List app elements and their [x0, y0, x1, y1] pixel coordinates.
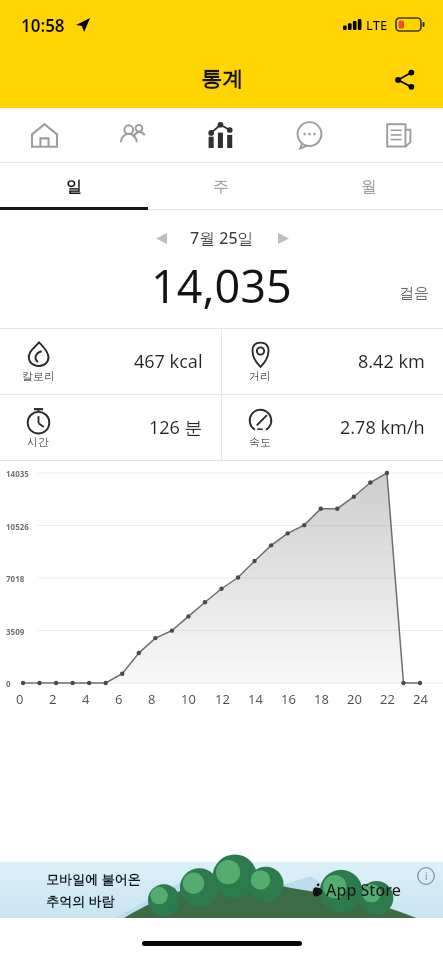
button[interactable]: News [354, 108, 443, 162]
staticText: 14,035 [151, 255, 292, 316]
staticText: 3509 [6, 626, 25, 637]
staticText: 16 [281, 690, 296, 708]
staticText: 14 [248, 690, 263, 708]
staticText: 24 [413, 690, 428, 708]
staticText: 시간 [27, 435, 49, 449]
staticText: App Store [326, 879, 401, 901]
button[interactable]: 속도 [222, 395, 443, 460]
button[interactable]: Previous day [146, 223, 176, 253]
staticText: 0 [16, 690, 24, 708]
staticText: 22 [380, 690, 395, 708]
staticText: 7월 25일 [190, 227, 254, 249]
staticText: 18 [314, 690, 329, 708]
staticText: 467 kcal [134, 349, 203, 374]
staticText: 2.78 km/h [340, 415, 425, 440]
staticText: 모바일에 불어온 [46, 870, 141, 888]
staticText: 거리 [249, 369, 271, 383]
button[interactable]: 모바일에 불어온 [0, 862, 443, 918]
staticText: 10 [181, 690, 196, 708]
staticText: 주 [213, 177, 229, 197]
staticText: 8.42 km [358, 349, 425, 374]
button[interactable]: 시간 [0, 395, 221, 460]
button[interactable]: 주 [147, 163, 295, 210]
staticText: 7018 [6, 573, 25, 584]
button[interactable]: Chat [265, 108, 354, 162]
button[interactable]: Next day [268, 223, 298, 253]
staticText: 월 [361, 177, 377, 197]
staticText: 6 [115, 690, 123, 708]
button[interactable]: 칼로리 [0, 329, 221, 394]
staticText: 0 [6, 678, 11, 689]
button[interactable]: 거리 [222, 329, 443, 394]
button[interactable]: Friends [88, 108, 176, 162]
staticText: LTE [366, 16, 388, 34]
button[interactable]: Share [382, 57, 426, 101]
staticText: 10526 [6, 521, 29, 532]
staticText: 2 [49, 690, 57, 708]
button[interactable]: Statistics [176, 108, 265, 162]
staticText: i [425, 869, 428, 883]
staticText: 걸음 [399, 284, 429, 303]
staticText: 추억의 바람 [46, 892, 115, 910]
staticText: 통계 [201, 66, 243, 92]
staticText: 8 [148, 690, 156, 708]
button[interactable]: Ad info [417, 867, 435, 885]
staticText: 4 [82, 690, 90, 708]
staticText: 126 분 [149, 415, 203, 440]
staticText: 20 [347, 690, 362, 708]
button[interactable]: 월 [295, 163, 443, 210]
staticText: 칼로리 [22, 369, 55, 383]
staticText: 속도 [249, 435, 271, 449]
staticText: 일 [66, 177, 82, 197]
staticText: 14035 [6, 468, 29, 479]
staticText: 10:58 [21, 14, 65, 37]
button[interactable]: Home [0, 108, 88, 162]
staticText: 12 [215, 690, 230, 708]
button[interactable]: 일 [0, 163, 147, 210]
